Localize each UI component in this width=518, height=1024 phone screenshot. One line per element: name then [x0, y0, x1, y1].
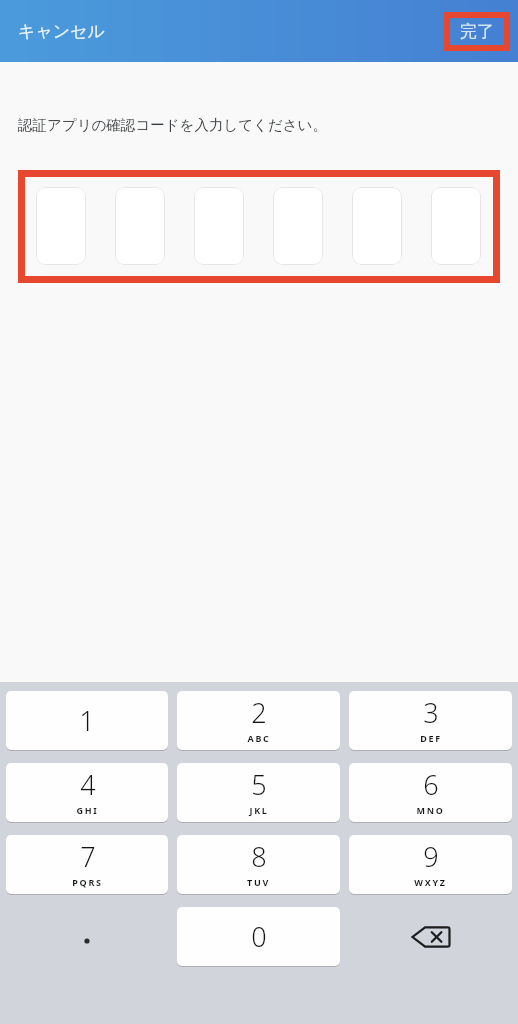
staticText: WXYZ	[414, 876, 447, 888]
button[interactable]: Code digit 1	[36, 187, 86, 265]
staticText: 7	[80, 838, 96, 875]
staticText: ABC	[247, 732, 271, 744]
button[interactable]: Code digit 5	[352, 187, 402, 265]
staticText: 5	[251, 766, 267, 803]
staticText: TUV	[247, 876, 270, 888]
staticText: 完了	[460, 21, 494, 42]
button[interactable]: 2	[177, 691, 340, 750]
staticText: GHI	[76, 804, 99, 816]
button[interactable]: 0	[177, 907, 340, 966]
button[interactable]: Code digit 6	[431, 187, 481, 265]
staticText: 9	[423, 838, 439, 875]
button[interactable]: 4	[6, 763, 168, 822]
staticText: 6	[423, 766, 439, 803]
button[interactable]: 3	[349, 691, 512, 750]
staticText: 4	[80, 766, 96, 803]
staticText: キャンセル	[18, 21, 105, 42]
button[interactable]: Code digit 4	[273, 187, 323, 265]
staticText: 1	[79, 702, 95, 739]
button[interactable]: 6	[349, 763, 512, 822]
staticText: PQRS	[72, 876, 103, 888]
button[interactable]: Code digit 3	[194, 187, 244, 265]
staticText: JKL	[249, 804, 269, 816]
button[interactable]: 完了	[444, 12, 510, 51]
staticText: 0	[251, 918, 267, 955]
button[interactable]: Backspace	[349, 907, 512, 966]
button[interactable]: キャンセル	[0, 13, 119, 50]
button[interactable]: 1	[6, 691, 168, 750]
staticText: 2	[251, 694, 267, 731]
staticText: 認証アプリの確認コードを入力してください。	[18, 116, 327, 134]
staticText: 3	[423, 694, 439, 731]
button[interactable]: 5	[177, 763, 340, 822]
button[interactable]: 8	[177, 835, 340, 894]
staticText: 8	[251, 838, 267, 875]
button[interactable]: Period	[6, 907, 168, 966]
button[interactable]: 7	[6, 835, 168, 894]
button[interactable]: 9	[349, 835, 512, 894]
staticText: DEF	[420, 732, 442, 744]
staticText: MNO	[416, 804, 445, 816]
button[interactable]: Code digit 2	[115, 187, 165, 265]
